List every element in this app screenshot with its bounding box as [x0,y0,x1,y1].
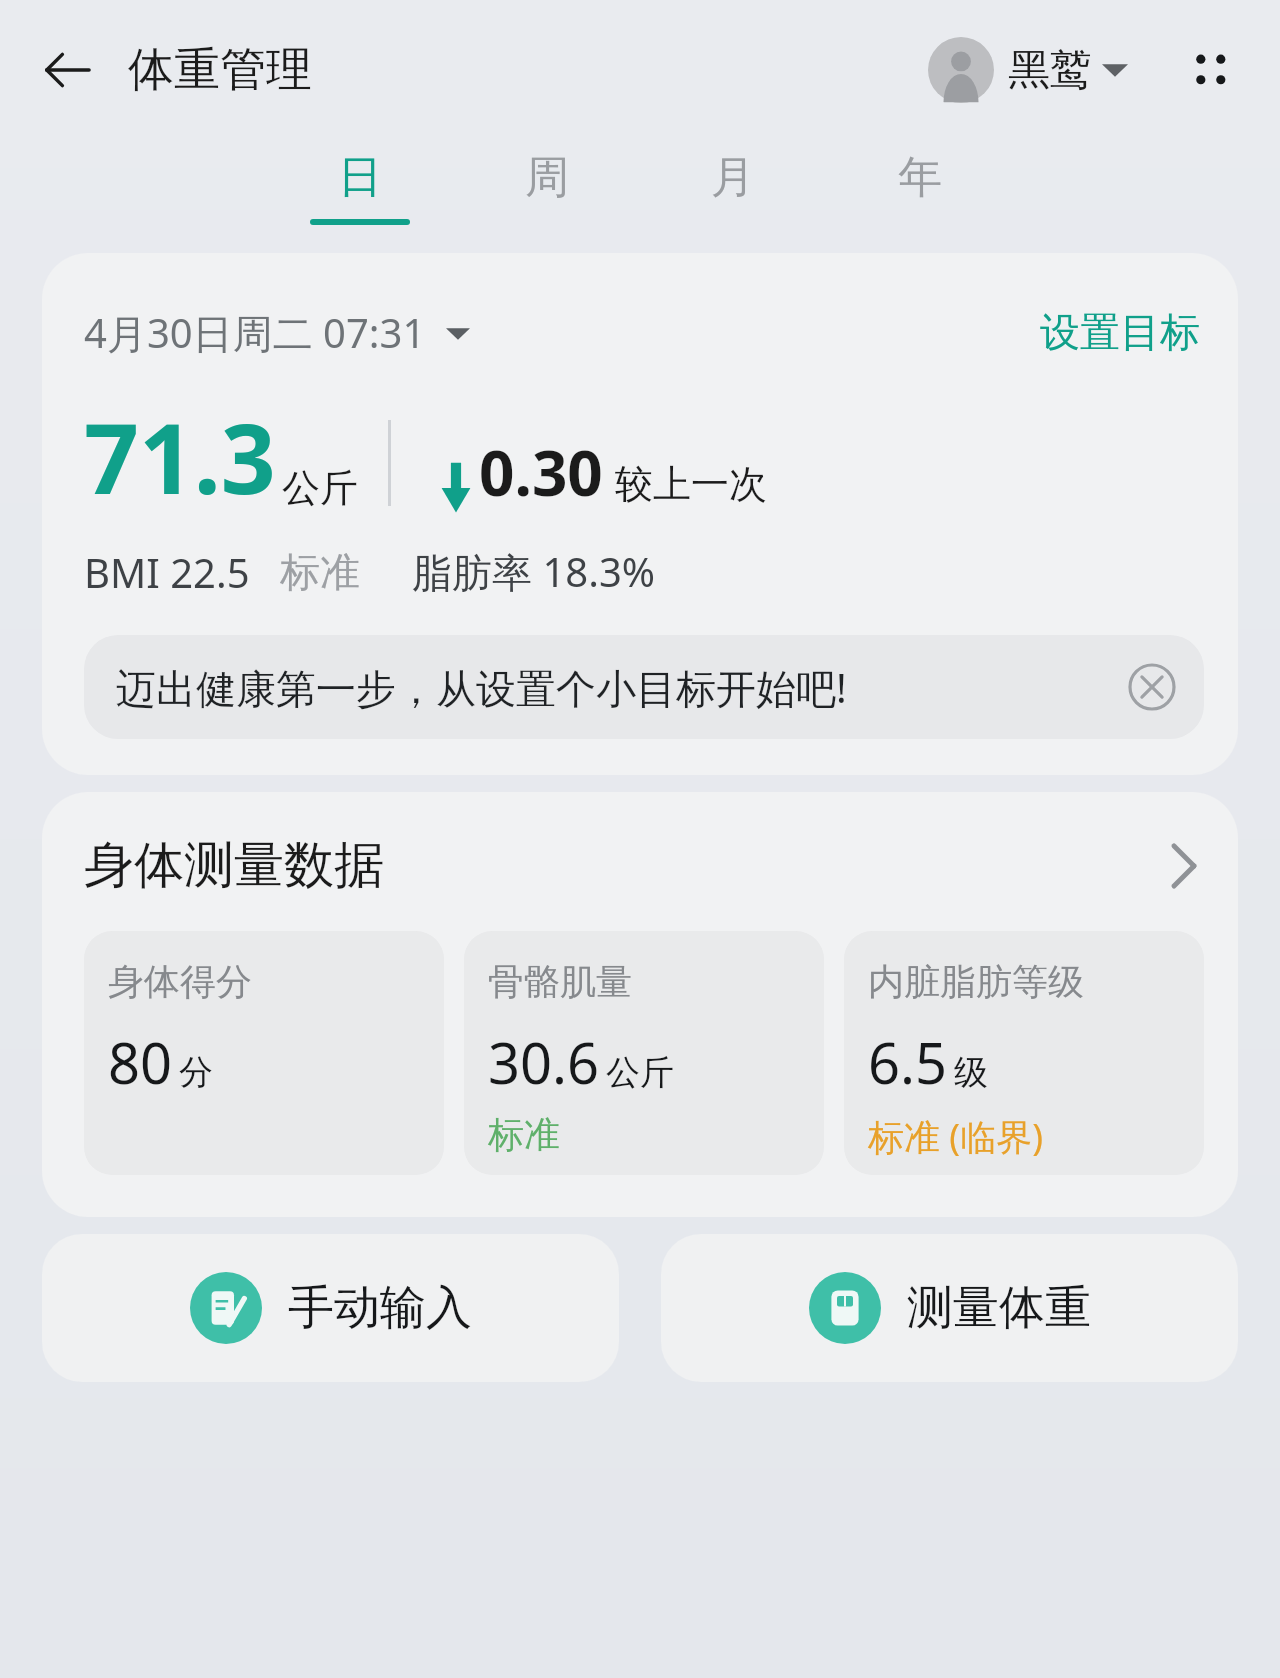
staticText: 公斤 [606,1051,674,1094]
button[interactable]: Dismiss [1124,659,1180,715]
staticText: 标准 (临界) [868,1112,1043,1161]
button[interactable]: 周 [487,140,607,235]
staticText: 4月30日周二 07:31 [84,305,426,360]
staticText: 脂肪率 18.3% [412,544,655,599]
staticText: 骨骼肌量 [488,959,632,1004]
button[interactable]: Back [30,33,104,107]
button[interactable]: 身体测量数据 [84,834,1204,897]
staticText: 黑鹫 [1008,44,1092,97]
staticText: 0.30 [479,430,603,514]
button[interactable]: 年 [860,140,980,235]
staticText: 公斤 [282,464,358,512]
staticText: 80 [108,1024,173,1100]
staticText: 较上一次 [615,460,767,508]
staticText: 周 [525,150,569,205]
button[interactable]: 黑鹫 [924,33,1132,107]
staticText: 年 [898,150,942,205]
staticText: 月 [711,150,755,205]
staticText: 手动输入 [288,1279,472,1337]
staticText: 标准 [488,1112,560,1157]
staticText: 日 [338,150,382,205]
button[interactable]: 日 [300,140,420,235]
button[interactable]: 月 [673,140,793,235]
staticText: 设置目标 [1040,307,1200,357]
staticText: 身体测量数据 [84,834,384,897]
staticText: 71.3 [84,391,276,522]
button[interactable]: 身体得分 [84,931,444,1175]
staticText: 测量体重 [907,1279,1091,1337]
staticText: 级 [954,1051,988,1094]
button[interactable]: 测量体重 [661,1234,1238,1382]
button[interactable]: 骨骼肌量 [464,931,824,1175]
button[interactable]: 迈出健康第一步，从设置个小目标开始吧! [84,635,1204,739]
button[interactable]: 设置目标 [1036,303,1204,361]
staticText: 分 [179,1051,213,1094]
button[interactable]: 手动输入 [42,1234,619,1382]
button[interactable]: More options [1170,30,1250,110]
staticText: 内脏脂肪等级 [868,959,1084,1004]
staticText: 体重管理 [128,41,312,99]
button[interactable]: 内脏脂肪等级 [844,931,1204,1175]
staticText: 6.5 [868,1024,948,1100]
staticText: 标准 [280,547,360,597]
button[interactable]: 4月30日周二 07:31 [84,305,470,360]
staticText: 迈出健康第一步，从设置个小目标开始吧! [116,660,847,715]
staticText: BMI 22.5 [84,545,250,599]
staticText: 身体得分 [108,959,252,1004]
staticText: 30.6 [488,1024,600,1100]
